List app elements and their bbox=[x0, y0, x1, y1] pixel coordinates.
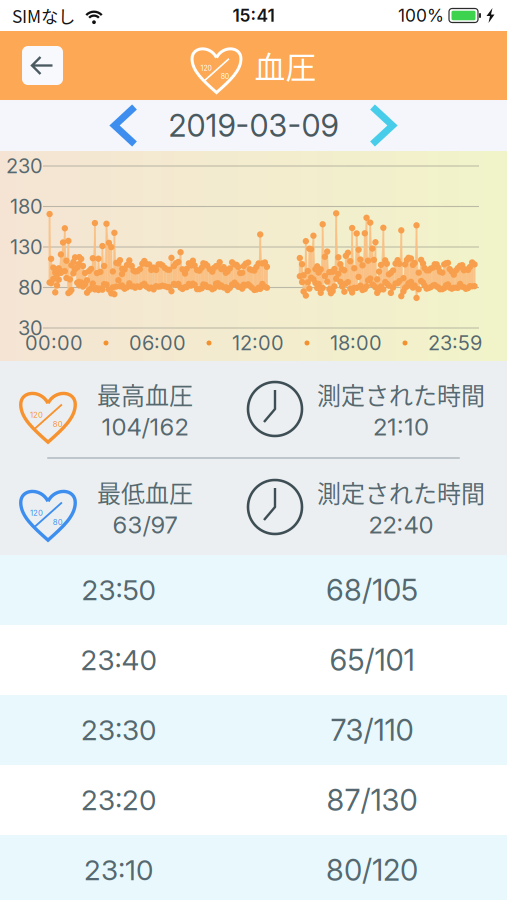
button[interactable]: 23:30 bbox=[0, 695, 507, 765]
staticText: 120 bbox=[30, 410, 43, 420]
staticText: 23:40 bbox=[80, 643, 156, 677]
staticText: 23:20 bbox=[81, 783, 156, 817]
button[interactable]: 23:10 bbox=[0, 835, 507, 900]
staticText: 18:00 bbox=[330, 331, 382, 355]
staticText: SIMなし bbox=[12, 3, 75, 28]
staticText: 68/105 bbox=[326, 572, 418, 608]
staticText: 80 bbox=[53, 517, 63, 527]
staticText: 120 bbox=[30, 508, 43, 518]
button[interactable]: Previous day bbox=[102, 103, 146, 147]
staticText: 15:41 bbox=[232, 5, 274, 26]
staticText: 80 bbox=[221, 72, 229, 81]
staticText: 180 bbox=[10, 194, 43, 219]
staticText: 00:00 bbox=[25, 331, 83, 355]
staticText: 12:00 bbox=[232, 331, 284, 355]
staticText: 22:40 bbox=[368, 510, 433, 539]
button[interactable]: 23:50 bbox=[0, 555, 507, 625]
staticText: 100% bbox=[398, 5, 444, 26]
staticText: 21:10 bbox=[373, 412, 429, 441]
staticText: 63/97 bbox=[112, 510, 177, 539]
staticText: 80/120 bbox=[326, 852, 418, 888]
staticText: 06:00 bbox=[129, 331, 186, 355]
staticText: 104/162 bbox=[101, 412, 188, 441]
button[interactable]: Back bbox=[22, 46, 63, 85]
staticText: 80 bbox=[18, 275, 43, 300]
staticText: 130 bbox=[10, 235, 43, 259]
button[interactable]: 23:20 bbox=[0, 765, 507, 835]
staticText: 血圧 bbox=[254, 43, 316, 88]
button[interactable]: 23:40 bbox=[0, 625, 507, 695]
staticText: 測定された時間 bbox=[317, 377, 485, 411]
staticText: 87/130 bbox=[326, 782, 417, 818]
staticText: 23:59 bbox=[428, 331, 482, 355]
staticText: 23:30 bbox=[81, 713, 156, 747]
staticText: 23:10 bbox=[84, 853, 153, 887]
staticText: 230 bbox=[6, 154, 43, 178]
staticText: 65/101 bbox=[329, 642, 414, 678]
staticText: 最高血圧 bbox=[97, 377, 193, 411]
button[interactable]: Next day bbox=[360, 103, 404, 147]
staticText: 30 bbox=[18, 316, 43, 340]
staticText: 120 bbox=[200, 64, 211, 72]
staticText: 80 bbox=[53, 419, 63, 429]
staticText: 2019-03-09 bbox=[168, 107, 338, 144]
staticText: 測定された時間 bbox=[317, 475, 485, 509]
staticText: 最低血圧 bbox=[97, 475, 193, 509]
staticText: 23:50 bbox=[81, 573, 155, 607]
staticText: 73/110 bbox=[330, 712, 413, 748]
